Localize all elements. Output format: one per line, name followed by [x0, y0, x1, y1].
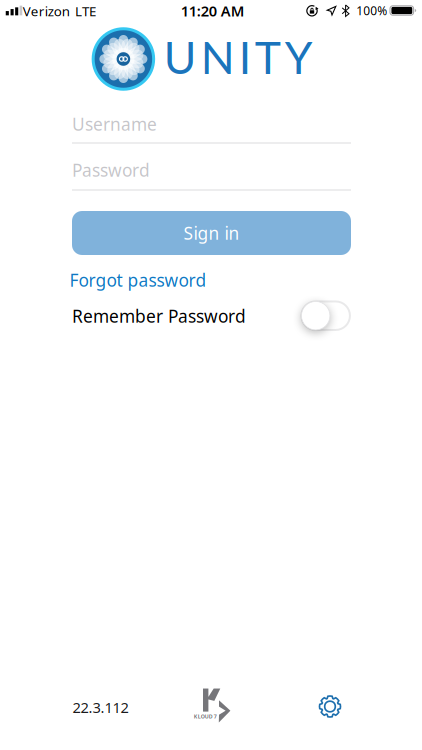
staticText: LTE	[75, 2, 96, 20]
button[interactable]: Forgot password	[69, 268, 206, 291]
staticText: KLOUD 7	[194, 713, 217, 720]
staticText: Sign in	[183, 221, 239, 244]
button[interactable]: Remember Password	[300, 300, 351, 331]
staticText: Password	[72, 155, 176, 185]
staticText: Remember Password	[72, 304, 246, 327]
button[interactable]: Sign in	[72, 211, 351, 255]
staticText: Username	[72, 109, 183, 139]
staticText: 100%	[356, 3, 387, 18]
staticText: UNITY	[164, 30, 313, 84]
secureTextField[interactable]: Password	[72, 155, 351, 185]
staticText: Forgot password	[69, 268, 206, 291]
staticText: Password	[72, 158, 150, 181]
button[interactable]: Settings	[315, 691, 345, 721]
staticText: Username	[72, 112, 157, 135]
staticText: Verizon	[23, 2, 70, 20]
textField[interactable]: Username	[72, 109, 351, 139]
staticText: 22.3.112	[72, 698, 128, 717]
staticText: 11:20 AM	[181, 1, 245, 21]
